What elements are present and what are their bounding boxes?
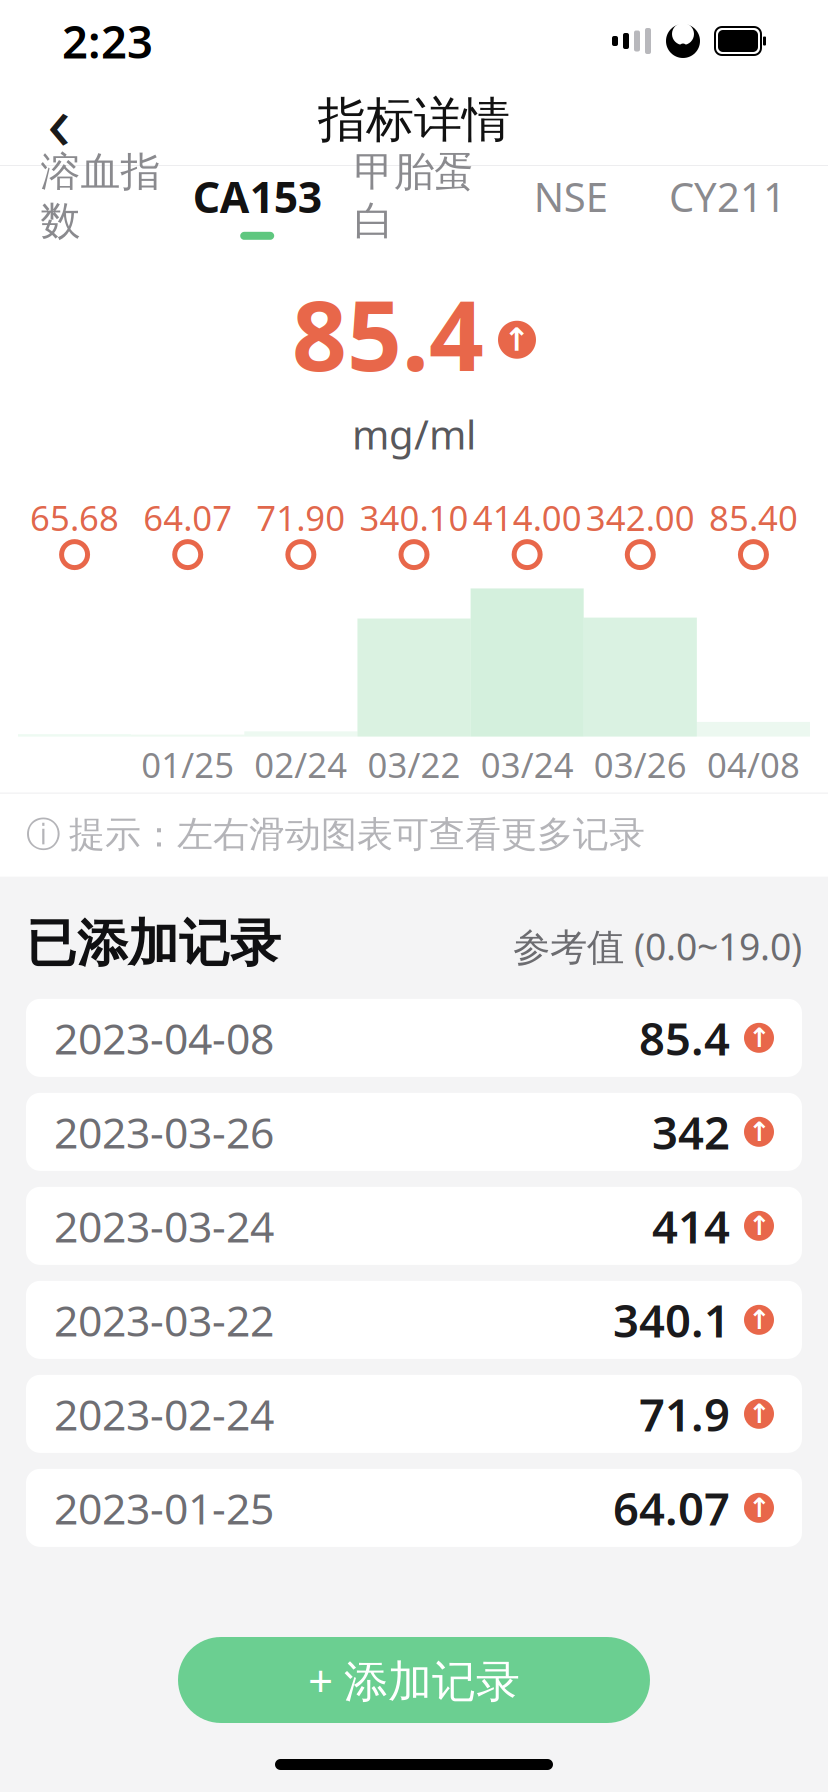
button[interactable]: CY211 [649, 169, 806, 239]
staticText: 85.40 [709, 495, 798, 541]
staticText: 02/24 [254, 742, 347, 788]
staticText: 2023-04-08 [54, 1009, 274, 1066]
staticText: 已添加记录 [26, 913, 281, 975]
button[interactable]: 2023-03-22 [26, 1281, 802, 1359]
staticText: NSE [534, 170, 608, 223]
staticText: 342.00 [586, 495, 695, 541]
staticText: 2:23 [62, 11, 153, 71]
staticText: CA153 [193, 168, 322, 225]
staticText: 71.9 [639, 1384, 730, 1444]
staticText: 64.07 [143, 495, 232, 541]
staticText: 溶血指数 [40, 147, 160, 246]
button[interactable]: NSE [492, 169, 649, 239]
staticText: 2023-02-24 [54, 1385, 274, 1442]
button[interactable]: 溶血指数 [22, 169, 179, 239]
button[interactable]: CA153 [179, 169, 336, 239]
staticText: + 添加记录 [308, 1651, 520, 1709]
button[interactable]: 2023-03-26 [26, 1093, 802, 1171]
staticText: ↑ [748, 1211, 770, 1241]
staticText: 340.10 [359, 495, 468, 541]
staticText: CY211 [669, 170, 786, 223]
button[interactable]: 2023-02-24 [26, 1375, 802, 1453]
staticText: 2023-01-25 [54, 1479, 274, 1536]
button[interactable]: 2023-03-24 [26, 1187, 802, 1265]
staticText: ↑ [748, 1117, 770, 1147]
staticText: ↑ [748, 1305, 770, 1335]
staticText: 414.00 [473, 495, 582, 541]
staticText: mg/ml [352, 407, 476, 461]
staticText: 参考值 (0.0~19.0) [513, 921, 802, 971]
staticText: ↑ [748, 1023, 770, 1053]
staticText: 01/25 [141, 742, 234, 788]
staticText: 85.4 [292, 270, 484, 397]
staticText: ↑ [503, 322, 530, 358]
staticText: 414 [652, 1196, 730, 1256]
staticText: 03/22 [367, 742, 460, 788]
button[interactable]: Back [14, 82, 104, 158]
button[interactable]: 2023-04-08 [26, 999, 802, 1077]
staticText: 指标详情 [318, 90, 510, 149]
staticText: ⓘ [26, 813, 61, 856]
staticText: 65.68 [30, 495, 119, 541]
staticText: 提示：左右滑动图表可查看更多记录 [69, 812, 645, 857]
staticText: 85.4 [639, 1008, 730, 1068]
button[interactable]: 甲胎蛋白 [336, 169, 492, 239]
staticText: 甲胎蛋白 [354, 147, 474, 246]
staticText: 342 [652, 1102, 730, 1162]
staticText: 03/24 [481, 742, 574, 788]
button[interactable]: 2023-01-25 [26, 1469, 802, 1547]
button[interactable]: + 添加记录 [178, 1637, 650, 1723]
staticText: 340.1 [613, 1290, 730, 1350]
staticText: 03/26 [594, 742, 687, 788]
staticText: ↑ [748, 1399, 770, 1429]
staticText: 2023-03-24 [54, 1197, 274, 1254]
staticText: 71.90 [256, 495, 345, 541]
staticText: ↑ [748, 1493, 770, 1523]
staticText: 04/08 [707, 742, 800, 788]
staticText: 2023-03-22 [54, 1291, 274, 1348]
staticText: ‹ [47, 69, 71, 171]
staticText: 2023-03-26 [54, 1103, 274, 1160]
staticText: 64.07 [613, 1478, 730, 1538]
